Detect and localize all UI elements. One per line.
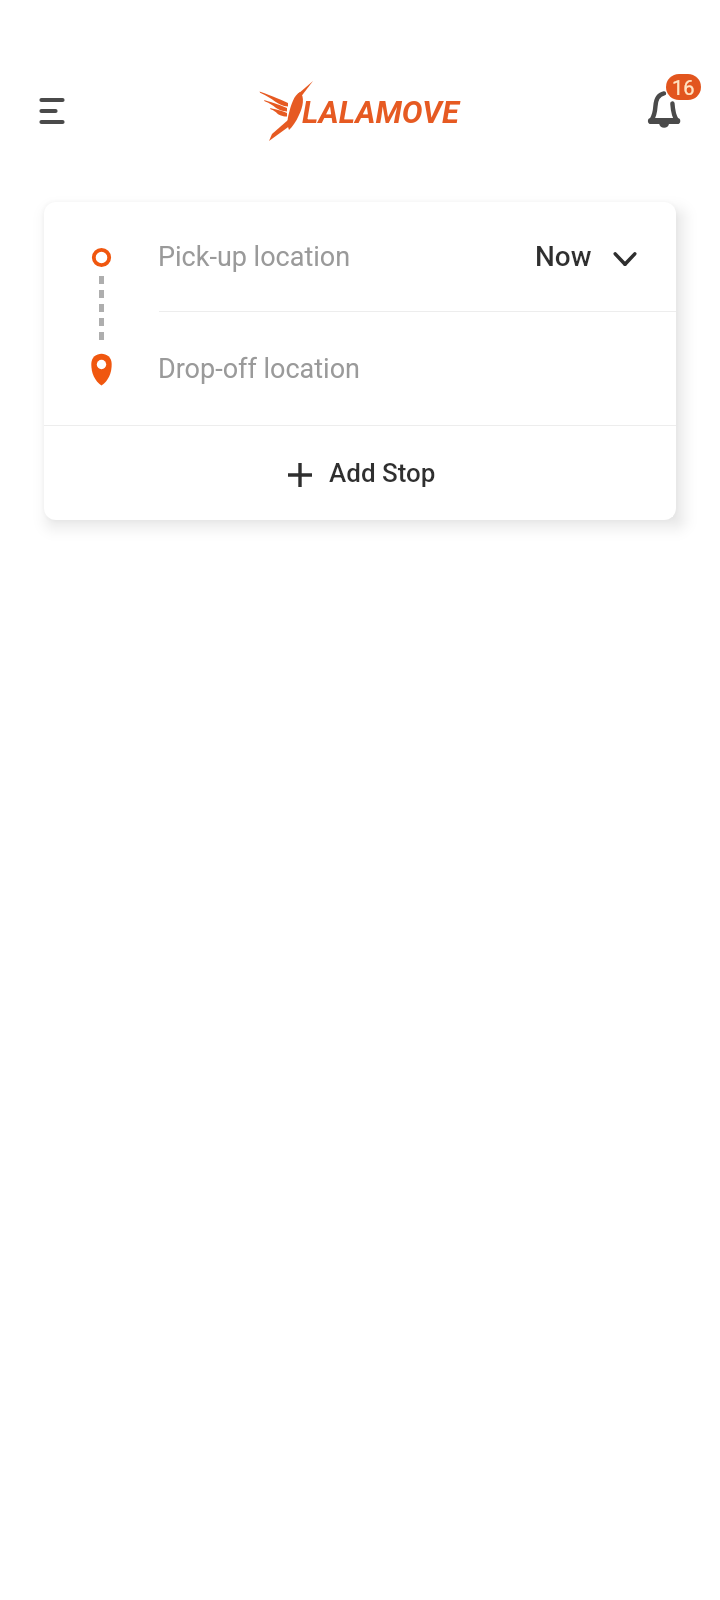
- staticText: 16: [672, 76, 695, 99]
- staticText: Add Stop: [329, 458, 436, 488]
- staticText: Drop-off location: [158, 353, 360, 385]
- button[interactable]: Menu: [18, 75, 90, 147]
- button[interactable]: Notifications: [624, 60, 706, 142]
- staticText: Now: [535, 240, 592, 273]
- staticText: Pick-up location: [158, 241, 351, 273]
- button[interactable]: Pick-up location: [44, 202, 676, 311]
- button[interactable]: Add Stop: [44, 426, 676, 520]
- staticText: LALAMOVE: [302, 94, 459, 130]
- button[interactable]: Drop-off location: [44, 312, 676, 425]
